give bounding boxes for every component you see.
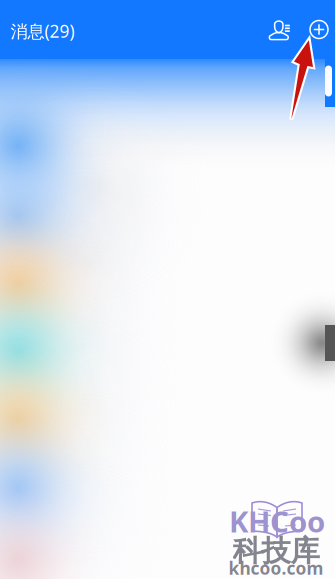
staticText: KHCoo [229,501,325,540]
staticText: 消息(29) [10,19,74,42]
button[interactable]: Contacts [259,10,299,50]
button[interactable]: Add [299,9,335,49]
staticText: khcoo.com [228,556,323,579]
staticText: 科技库 [232,533,319,569]
